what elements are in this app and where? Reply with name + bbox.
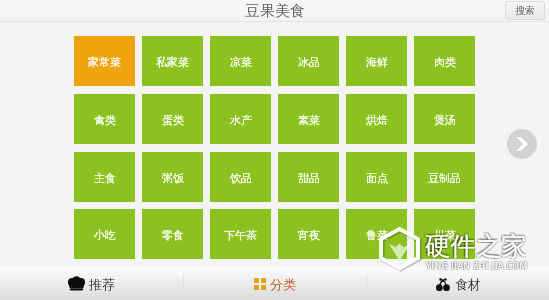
staticText: 水产 bbox=[230, 113, 252, 127]
button[interactable]: 零食 bbox=[142, 209, 203, 259]
staticText: 烘焙 bbox=[366, 113, 388, 127]
staticText: 硬件之家 bbox=[423, 228, 525, 260]
staticText: 硬件之家 bbox=[423, 231, 525, 263]
button[interactable]: 下午茶 bbox=[210, 209, 271, 259]
staticText: 甜品 bbox=[298, 171, 320, 185]
staticText: 凉菜 bbox=[230, 55, 252, 69]
staticText: 饮品 bbox=[230, 171, 252, 185]
staticText: 小吃 bbox=[94, 228, 116, 242]
staticText: YING JIAN ZHI JIA.COM bbox=[427, 259, 529, 271]
button[interactable]: 鲁菜 bbox=[346, 209, 407, 259]
staticText: 禽类 bbox=[94, 113, 116, 127]
staticText: 肉类 bbox=[434, 55, 456, 69]
staticText: 硬件之家 bbox=[425, 230, 527, 262]
button[interactable]: 素菜 bbox=[278, 94, 339, 144]
staticText: 蛋类 bbox=[162, 113, 184, 127]
button[interactable]: 推荐 bbox=[0, 267, 183, 300]
staticText: 硬件之家 bbox=[425, 230, 527, 262]
button[interactable]: Next page bbox=[507, 129, 537, 159]
button[interactable]: 分类 bbox=[184, 267, 366, 300]
staticText: 鲁菜 bbox=[366, 228, 388, 242]
staticText: 零食 bbox=[162, 228, 184, 242]
button[interactable]: 水产 bbox=[210, 94, 271, 144]
staticText: 冰品 bbox=[298, 55, 320, 69]
staticText: 粥饭 bbox=[162, 171, 184, 185]
staticText: 推荐 bbox=[89, 276, 115, 292]
button[interactable]: 肉类 bbox=[414, 36, 475, 86]
button[interactable]: 面点 bbox=[346, 152, 407, 202]
staticText: 川菜 bbox=[434, 228, 456, 242]
staticText: 硬件之家 bbox=[425, 228, 527, 260]
button[interactable]: 小吃 bbox=[74, 209, 135, 259]
button[interactable]: 食材 bbox=[367, 267, 549, 300]
staticText: 硬件之家 bbox=[426, 230, 528, 262]
staticText: 硬件之家 bbox=[423, 230, 525, 262]
staticText: YING JIAN ZHI JIA.COM bbox=[427, 261, 529, 273]
staticText: YING JIAN ZHI JIA.COM bbox=[425, 260, 527, 272]
button[interactable]: 饮品 bbox=[210, 152, 271, 202]
button[interactable]: 冰品 bbox=[278, 36, 339, 86]
staticText: 煲汤 bbox=[434, 113, 456, 127]
button[interactable]: 豆制品 bbox=[414, 152, 475, 202]
staticText: 豆制品 bbox=[428, 171, 461, 185]
button[interactable]: 粥饭 bbox=[142, 152, 203, 202]
button[interactable]: 宵夜 bbox=[278, 209, 339, 259]
button[interactable]: 禽类 bbox=[74, 94, 135, 144]
staticText: 硬件之家 bbox=[426, 231, 528, 263]
staticText: 私家菜 bbox=[156, 55, 189, 69]
staticText: 分类 bbox=[270, 276, 296, 292]
staticText: YING JIAN ZHI JIA.COM bbox=[425, 261, 527, 273]
staticText: 面点 bbox=[366, 171, 388, 185]
staticText: 硬件之家 bbox=[426, 228, 528, 260]
staticText: 家常菜 bbox=[88, 55, 121, 69]
staticText: YING JIAN ZHI JIA.COM bbox=[427, 260, 529, 272]
button[interactable]: 主食 bbox=[74, 152, 135, 202]
staticText: YING JIAN ZHI JIA.COM bbox=[425, 259, 527, 271]
button[interactable]: 川菜 bbox=[414, 209, 475, 259]
button[interactable]: 凉菜 bbox=[210, 36, 271, 86]
staticText: YING JIAN ZHI JIA.COM bbox=[426, 259, 528, 271]
button[interactable]: 甜品 bbox=[278, 152, 339, 202]
staticText: 食材 bbox=[455, 276, 481, 292]
button[interactable]: 煲汤 bbox=[414, 94, 475, 144]
button[interactable]: 蛋类 bbox=[142, 94, 203, 144]
staticText: 搜索 bbox=[515, 4, 535, 17]
button[interactable]: 家常菜 bbox=[74, 36, 135, 86]
staticText: 下午茶 bbox=[224, 228, 257, 242]
staticText: 素菜 bbox=[298, 113, 320, 127]
staticText: 海鲜 bbox=[366, 55, 388, 69]
button[interactable]: 搜索 bbox=[505, 1, 545, 20]
button[interactable]: 私家菜 bbox=[142, 36, 203, 86]
staticText: YING JIAN ZHI JIA.COM bbox=[426, 260, 528, 272]
staticText: 硬件之家 bbox=[425, 231, 527, 263]
button[interactable]: 海鲜 bbox=[346, 36, 407, 86]
staticText: 宵夜 bbox=[298, 228, 320, 242]
staticText: YING JIAN ZHI JIA.COM bbox=[426, 260, 528, 272]
staticText: YING JIAN ZHI JIA.COM bbox=[426, 261, 528, 273]
button[interactable]: 烘焙 bbox=[346, 94, 407, 144]
staticText: 豆果美食 bbox=[245, 2, 305, 21]
staticText: 主食 bbox=[94, 171, 116, 185]
